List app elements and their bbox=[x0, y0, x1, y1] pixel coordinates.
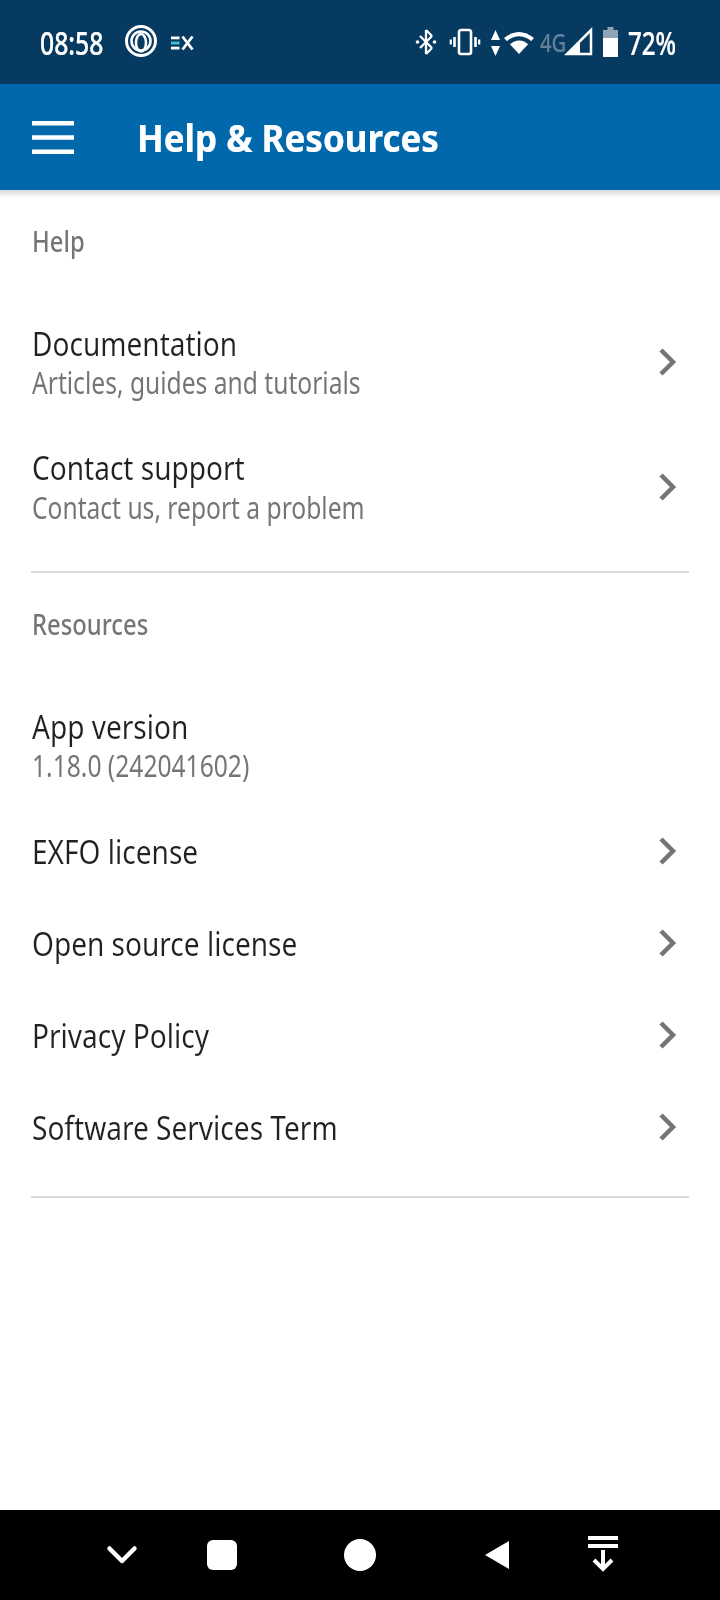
staticText: EXFO license bbox=[32, 829, 199, 874]
button[interactable]: Open source license bbox=[0, 897, 720, 989]
staticText: Contact support bbox=[32, 445, 245, 490]
staticText: 72% bbox=[628, 20, 676, 65]
staticText: Help bbox=[32, 222, 85, 260]
button[interactable]: Software Services Term bbox=[0, 1081, 720, 1173]
staticText: Help & Resources bbox=[137, 111, 440, 163]
staticText: 4G bbox=[540, 24, 566, 59]
staticText: Articles, guides and tutorials bbox=[32, 362, 361, 403]
button[interactable] bbox=[466, 1525, 526, 1585]
button[interactable] bbox=[92, 1525, 152, 1585]
button[interactable]: EXFO license bbox=[0, 805, 720, 897]
button[interactable] bbox=[330, 1525, 390, 1585]
button[interactable]: Privacy Policy bbox=[0, 989, 720, 1081]
button[interactable] bbox=[192, 1525, 252, 1585]
staticText: Documentation bbox=[32, 321, 238, 366]
staticText: Contact us, report a problem bbox=[32, 487, 365, 528]
staticText: 08:58 bbox=[40, 20, 104, 65]
button[interactable] bbox=[22, 106, 84, 168]
button[interactable]: Contact support bbox=[0, 425, 720, 552]
staticText: Privacy Policy bbox=[32, 1013, 210, 1058]
staticText: Resources bbox=[32, 605, 148, 643]
staticText: Open source license bbox=[32, 921, 298, 966]
staticText: Software Services Term bbox=[32, 1105, 338, 1150]
staticText: App version bbox=[32, 704, 188, 749]
button[interactable]: App version bbox=[0, 683, 720, 810]
staticText: 1.18.0 (242041602) bbox=[32, 745, 249, 786]
button[interactable]: Documentation bbox=[0, 300, 720, 427]
button[interactable] bbox=[573, 1525, 633, 1585]
